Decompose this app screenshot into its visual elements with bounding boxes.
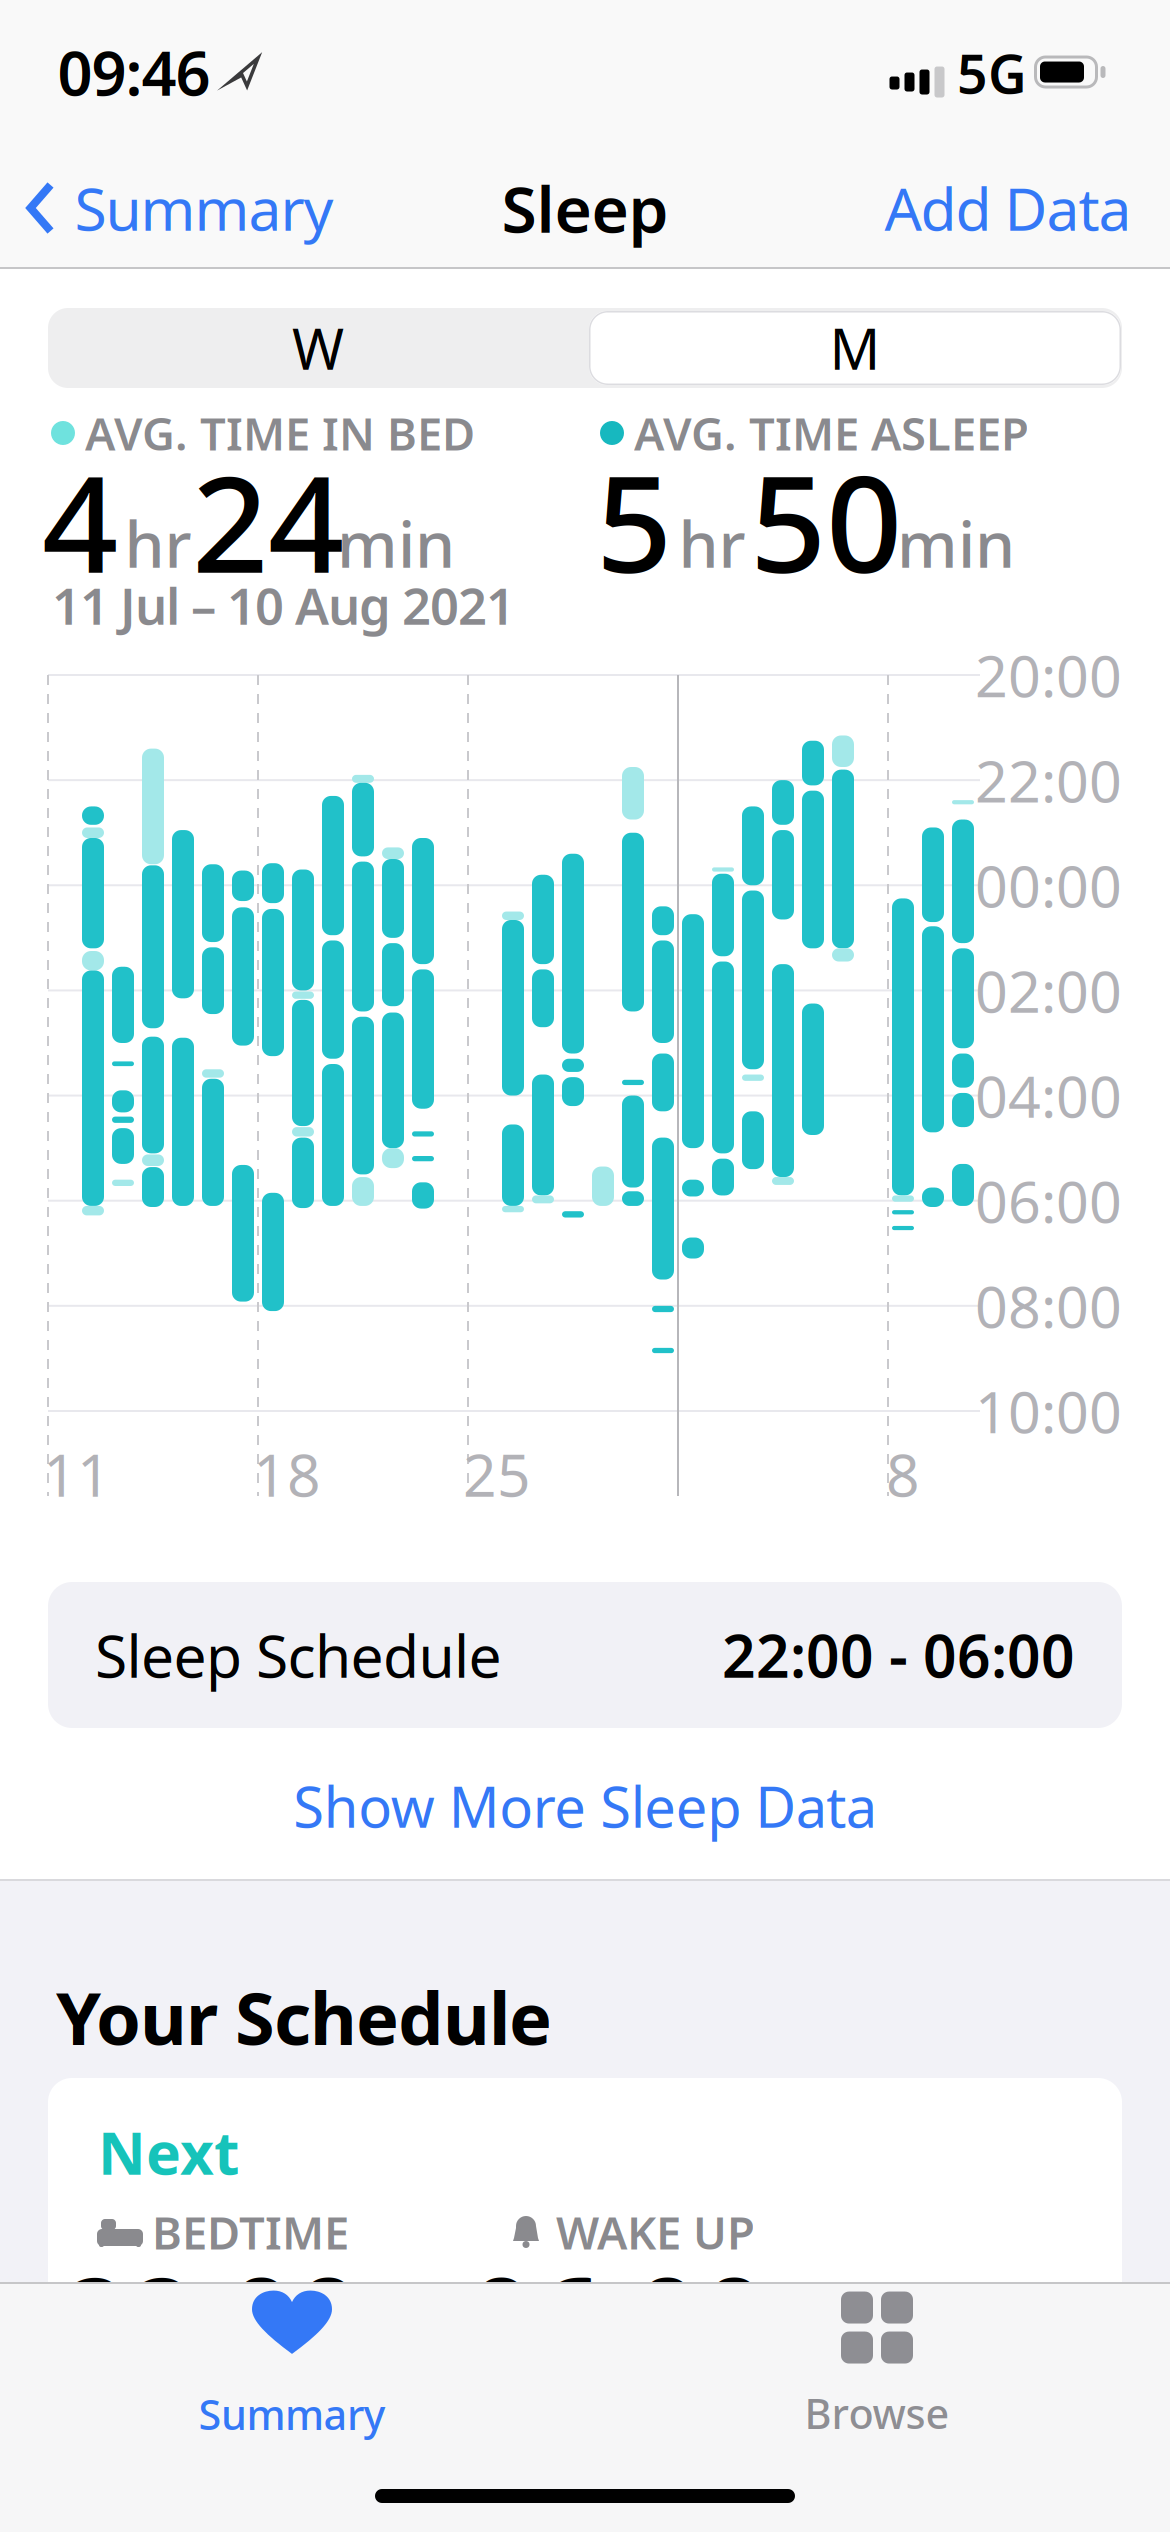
staticText: M [829,311,880,385]
staticText: Show More Sleep Data [293,1769,877,1843]
staticText: 04:00 [975,1057,1122,1134]
staticText: 10:00 [975,1373,1122,1449]
staticText: 06:00 [975,1163,1122,1239]
staticText: Add Data [884,169,1131,247]
staticText: 22:00 [975,742,1122,818]
staticText: 5 [596,432,672,610]
staticText: 00:00 [975,847,1122,923]
staticText: 02:00 [975,952,1122,1028]
staticText: Sleep Schedule [95,1616,501,1694]
staticText: 18 [253,1435,321,1513]
staticText: AVG. TIME ASLEEP [634,403,1029,463]
staticText: Your Schedule [56,1969,552,2065]
staticText: 5G [957,38,1027,108]
staticText: 22:00 - 06:00 [722,1616,1075,1694]
staticText: 20:00 [975,637,1122,713]
staticText: 25 [463,1435,531,1513]
staticText: W [292,311,344,385]
staticText: 50 [750,432,902,610]
staticText: Summary [74,169,333,247]
button[interactable]: Month [589,311,1121,385]
button[interactable]: Summary [26,169,333,247]
staticText: min [337,500,455,585]
staticText: hr [678,500,745,585]
staticText: Summary [198,2387,385,2441]
staticText: Next [98,2113,239,2191]
staticText: 11 Jul – 10 Aug 2021 [52,571,515,639]
staticText: 22:00 [62,2240,362,2396]
staticText: 24 [192,432,344,610]
staticText: Sleep [501,165,668,250]
staticText: 11 [43,1435,111,1513]
button[interactable]: Browse [804,2292,949,2440]
staticText: 06:00 [468,2240,768,2396]
staticText: WAKE UP [556,2202,755,2262]
button[interactable]: Summary [198,2291,385,2441]
button[interactable]: Week [58,311,578,385]
staticText: hr [124,500,191,585]
button[interactable]: Add Data [884,169,1131,247]
staticText: 08:00 [975,1268,1122,1344]
button[interactable]: Sleep Schedule [48,1582,1122,1728]
button[interactable]: Show More Sleep Data [293,1769,877,1843]
staticText: BEDTIME [152,2202,349,2262]
staticText: min [897,500,1015,585]
staticText: 8 [886,1435,920,1513]
staticText: 4 [42,432,118,610]
staticText: Browse [804,2386,949,2440]
staticText: AVG. TIME IN BED [85,403,475,463]
staticText: 09:46 [57,31,210,113]
